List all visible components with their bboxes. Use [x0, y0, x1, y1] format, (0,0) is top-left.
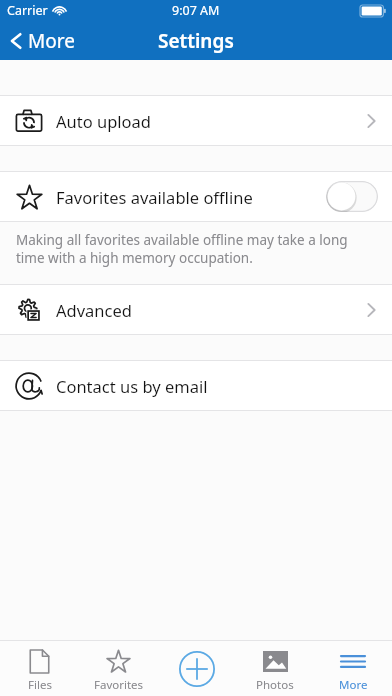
staticText: 9:07 AM — [172, 2, 220, 19]
staticText: Carrier — [7, 2, 48, 19]
button[interactable]: More — [314, 641, 392, 696]
staticText: Settings — [158, 28, 234, 54]
button[interactable]: Files — [0, 641, 79, 696]
staticText: Advanced — [56, 299, 132, 321]
staticText: Favorites — [94, 677, 144, 693]
button[interactable]: Contact us by email — [0, 361, 392, 410]
staticText: Contact us by email — [56, 375, 208, 397]
staticText: More — [339, 677, 368, 693]
button[interactable]: Favorites — [79, 641, 158, 696]
staticText: Photos — [256, 677, 294, 693]
staticText: Files — [28, 677, 52, 693]
button[interactable]: Advanced — [0, 285, 392, 334]
button[interactable]: Photos — [236, 641, 314, 696]
button[interactable]: Add — [158, 641, 236, 696]
staticText: Auto upload — [56, 110, 151, 132]
button[interactable]: Favorites available offline toggle — [326, 181, 378, 212]
button[interactable]: Favorites available offline — [0, 172, 392, 221]
staticText: Making all favorites available offline m… — [16, 231, 372, 267]
staticText: More — [28, 28, 75, 54]
button[interactable]: More — [0, 24, 87, 58]
staticText: Favorites available offline — [56, 186, 253, 208]
button[interactable]: Auto upload — [0, 96, 392, 145]
